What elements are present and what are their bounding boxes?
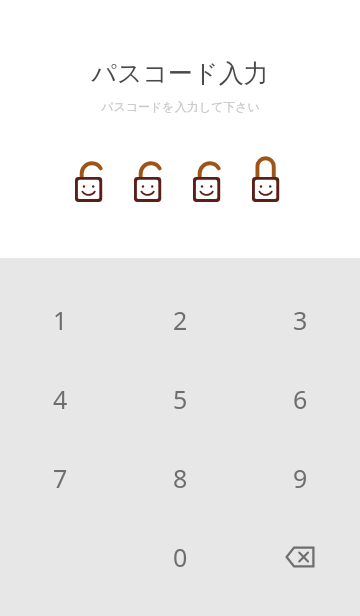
- staticText: 7: [53, 461, 68, 495]
- button[interactable]: 4: [0, 359, 120, 438]
- button[interactable]: 1: [0, 280, 120, 359]
- button[interactable]: 0: [120, 517, 240, 596]
- staticText: 4: [53, 382, 68, 416]
- button[interactable]: 2: [120, 280, 240, 359]
- staticText: 3: [293, 303, 308, 337]
- staticText: 1: [53, 303, 68, 337]
- staticText: パスコード入力: [91, 58, 269, 89]
- button[interactable]: 6: [240, 359, 360, 438]
- staticText: 9: [293, 461, 308, 495]
- staticText: パスコードを入力して下さい: [101, 99, 260, 114]
- staticText: 6: [293, 382, 308, 416]
- staticText: 0: [173, 540, 188, 574]
- button[interactable]: 9: [240, 438, 360, 517]
- button[interactable]: Backspace: [240, 517, 360, 596]
- staticText: 5: [173, 382, 188, 416]
- button[interactable]: 8: [120, 438, 240, 517]
- staticText: 8: [173, 461, 188, 495]
- staticText: 2: [173, 303, 188, 337]
- button[interactable]: 5: [120, 359, 240, 438]
- button[interactable]: 7: [0, 438, 120, 517]
- button[interactable]: 3: [240, 280, 360, 359]
